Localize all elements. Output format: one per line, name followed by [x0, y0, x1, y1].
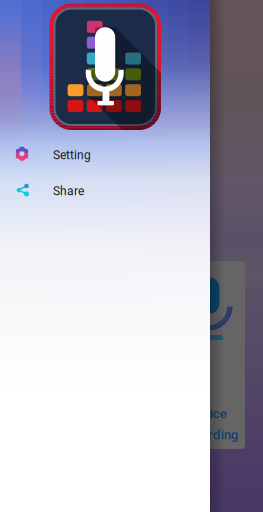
staticText: Voice	[194, 406, 227, 422]
staticText: Recording	[178, 427, 239, 443]
staticText: Setting	[53, 148, 91, 162]
staticText: Share	[53, 184, 84, 198]
button[interactable]: Share	[8, 173, 202, 207]
button[interactable]: Setting	[8, 137, 202, 171]
